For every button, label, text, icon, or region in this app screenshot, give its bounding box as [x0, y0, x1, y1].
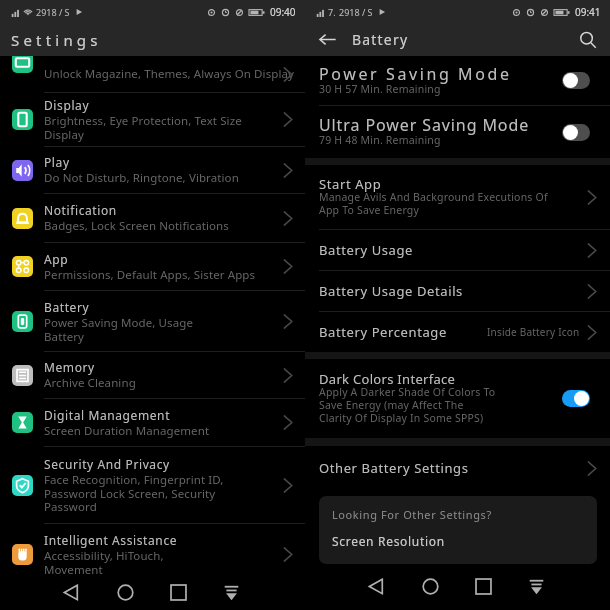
staticText: Play [44, 154, 70, 170]
button[interactable]: Other Battery Settings [305, 446, 610, 490]
staticText: Ultra Power Saving Mode [319, 114, 530, 136]
staticText: Dark Colors Interface [319, 370, 456, 388]
button[interactable]: Start App [305, 165, 610, 229]
button[interactable]: Ultra Power Saving Mode [562, 124, 590, 141]
staticText: Brightness, Eye Protection, Text Size Di… [44, 113, 242, 142]
staticText: App [44, 251, 69, 267]
staticText: Accessibility, HiTouch, Movement [44, 548, 164, 577]
button[interactable]: Home [110, 579, 140, 605]
staticText: Manage Avils And Background Executions O… [319, 190, 548, 217]
button[interactable]: App [0, 243, 305, 290]
staticText: 2918 / S [36, 6, 70, 18]
button[interactable]: Recents [468, 571, 498, 601]
staticText: Battery [352, 30, 409, 49]
staticText: Archive Cleaning [44, 375, 136, 391]
staticText: Face Recognition, Fingerprint ID, Passwo… [44, 472, 224, 514]
staticText: Inside Battery Icon [487, 325, 580, 339]
staticText: Intelligent Assistance [44, 532, 178, 548]
button[interactable]: Notification [0, 194, 305, 242]
staticText: Battery Usage [319, 241, 413, 259]
staticText: 09:40 [270, 5, 296, 19]
button[interactable]: Battery Usage Details [305, 271, 610, 311]
button[interactable]: Search [579, 31, 597, 49]
staticText: Digital Management [44, 407, 171, 423]
staticText: Screen Resolution [332, 533, 445, 549]
button[interactable]: Looking For Other Settings? [319, 496, 597, 564]
staticText: Unlock Magazine, Themes, Always On Displ… [44, 66, 295, 82]
staticText: Display [44, 97, 90, 113]
button[interactable]: Battery Usage [305, 230, 610, 270]
staticText: Looking For Other Settings? [332, 507, 492, 522]
staticText: 7. [328, 6, 336, 18]
button[interactable]: Dark Colors Interface [305, 359, 610, 438]
staticText: Battery Usage Details [319, 282, 463, 300]
staticText: Power Saving Mode, Usage Battery [44, 315, 194, 344]
button[interactable]: Hide navigation bar [216, 579, 246, 605]
button[interactable]: Play [0, 147, 305, 193]
staticText: 09:41 [575, 5, 601, 19]
staticText: Memory [44, 359, 95, 375]
staticText: Settings [11, 30, 102, 50]
staticText: Screen Duration Management [44, 423, 210, 439]
staticText: Battery [44, 299, 90, 315]
button[interactable]: Unlock Magazine, Themes, Always On Displ… [0, 56, 305, 92]
button[interactable]: Security And Privacy [0, 447, 305, 523]
staticText: Start App [319, 175, 382, 193]
button[interactable]: Memory [0, 352, 305, 398]
button[interactable]: Dark Colors Interface [562, 390, 590, 407]
staticText: 79 H 48 Min. Remaining [319, 133, 441, 147]
staticText: Power Saving Mode [319, 63, 512, 85]
button[interactable]: Digital Management [0, 399, 305, 446]
staticText: Notification [44, 202, 117, 218]
staticText: Permissions, Default Apps, Sister Apps [44, 267, 256, 283]
staticText: Do Not Disturb, Ringtone, Vibration [44, 170, 239, 186]
button[interactable]: Back [56, 579, 86, 605]
button[interactable]: Back [361, 571, 391, 601]
button[interactable]: Display [0, 93, 305, 146]
staticText: 2918 / S [339, 6, 373, 18]
button[interactable]: Ultra Power Saving Mode [305, 106, 610, 158]
button[interactable]: Battery Percentage [305, 312, 610, 352]
staticText: 30 H 57 Min. Remaining [319, 82, 441, 96]
staticText: Badges, Lock Screen Notifications [44, 218, 229, 234]
staticText: Security And Privacy [44, 456, 170, 472]
button[interactable]: Power Saving Mode [305, 56, 610, 105]
button[interactable]: Intelligent Assistance [0, 524, 305, 584]
staticText: Battery Percentage [319, 323, 447, 341]
staticText: Other Battery Settings [319, 459, 469, 477]
button[interactable]: Recents [163, 579, 193, 605]
button[interactable]: Home [415, 571, 445, 601]
button[interactable]: Power Saving Mode [562, 72, 590, 89]
button[interactable]: Battery [0, 291, 305, 351]
staticText: Apply A Darker Shade Of Colors To Save E… [319, 385, 496, 425]
button[interactable]: Hide navigation bar [521, 571, 551, 601]
button[interactable]: Back [318, 30, 337, 49]
